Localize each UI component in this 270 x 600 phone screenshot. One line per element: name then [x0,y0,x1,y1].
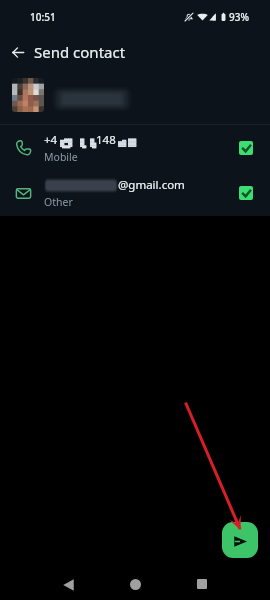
staticText: 148 [96,132,116,148]
button[interactable]: +4 [0,125,270,170]
button[interactable]: Recents [188,570,216,598]
button[interactable]: Send [222,522,258,558]
staticText: Send contact [34,42,126,62]
button[interactable] [0,66,270,124]
button[interactable]: Selected [235,182,257,204]
button[interactable]: Back [54,571,82,599]
button[interactable]: Home [121,570,149,598]
staticText: Other [44,195,73,209]
button[interactable]: @gmail.com [0,170,270,216]
staticText: Mobile [44,150,78,164]
staticText: 93% [229,10,249,24]
staticText: 10:51 [30,10,56,24]
staticText: @gmail.com [118,177,185,193]
button[interactable]: Selected [235,137,257,159]
staticText: +4 [44,132,58,148]
button[interactable]: Back [0,34,36,70]
